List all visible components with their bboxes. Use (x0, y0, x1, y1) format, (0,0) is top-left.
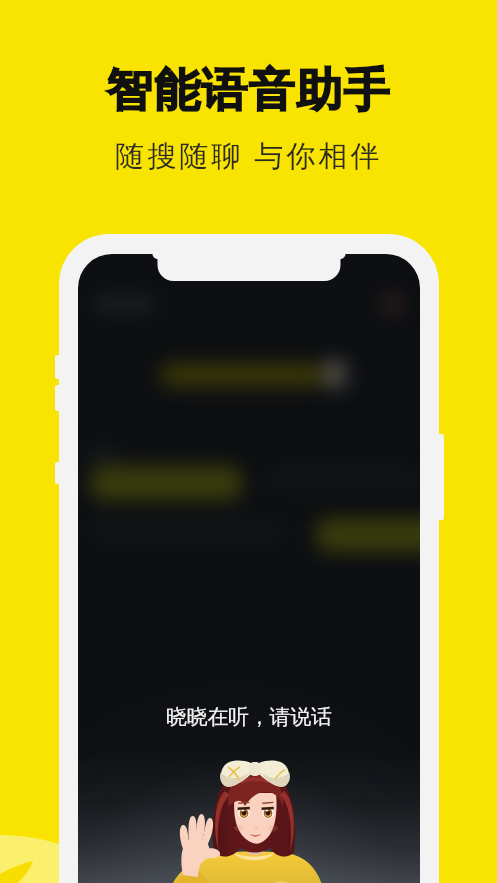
button[interactable]: Voice assistant avatar, listening (98, 752, 400, 883)
button[interactable]: Assistant reply bubble (84, 460, 248, 506)
staticText: 智能语音助手 (106, 62, 391, 120)
button[interactable]: User message bubble (310, 512, 420, 558)
button[interactable]: 晓晓在听，请说话 (148, 696, 350, 738)
button[interactable]: Profile (374, 288, 408, 320)
staticText: 随搜随聊 与你相伴 (115, 135, 383, 175)
staticText: 晓晓在听，请说话 (166, 704, 332, 730)
